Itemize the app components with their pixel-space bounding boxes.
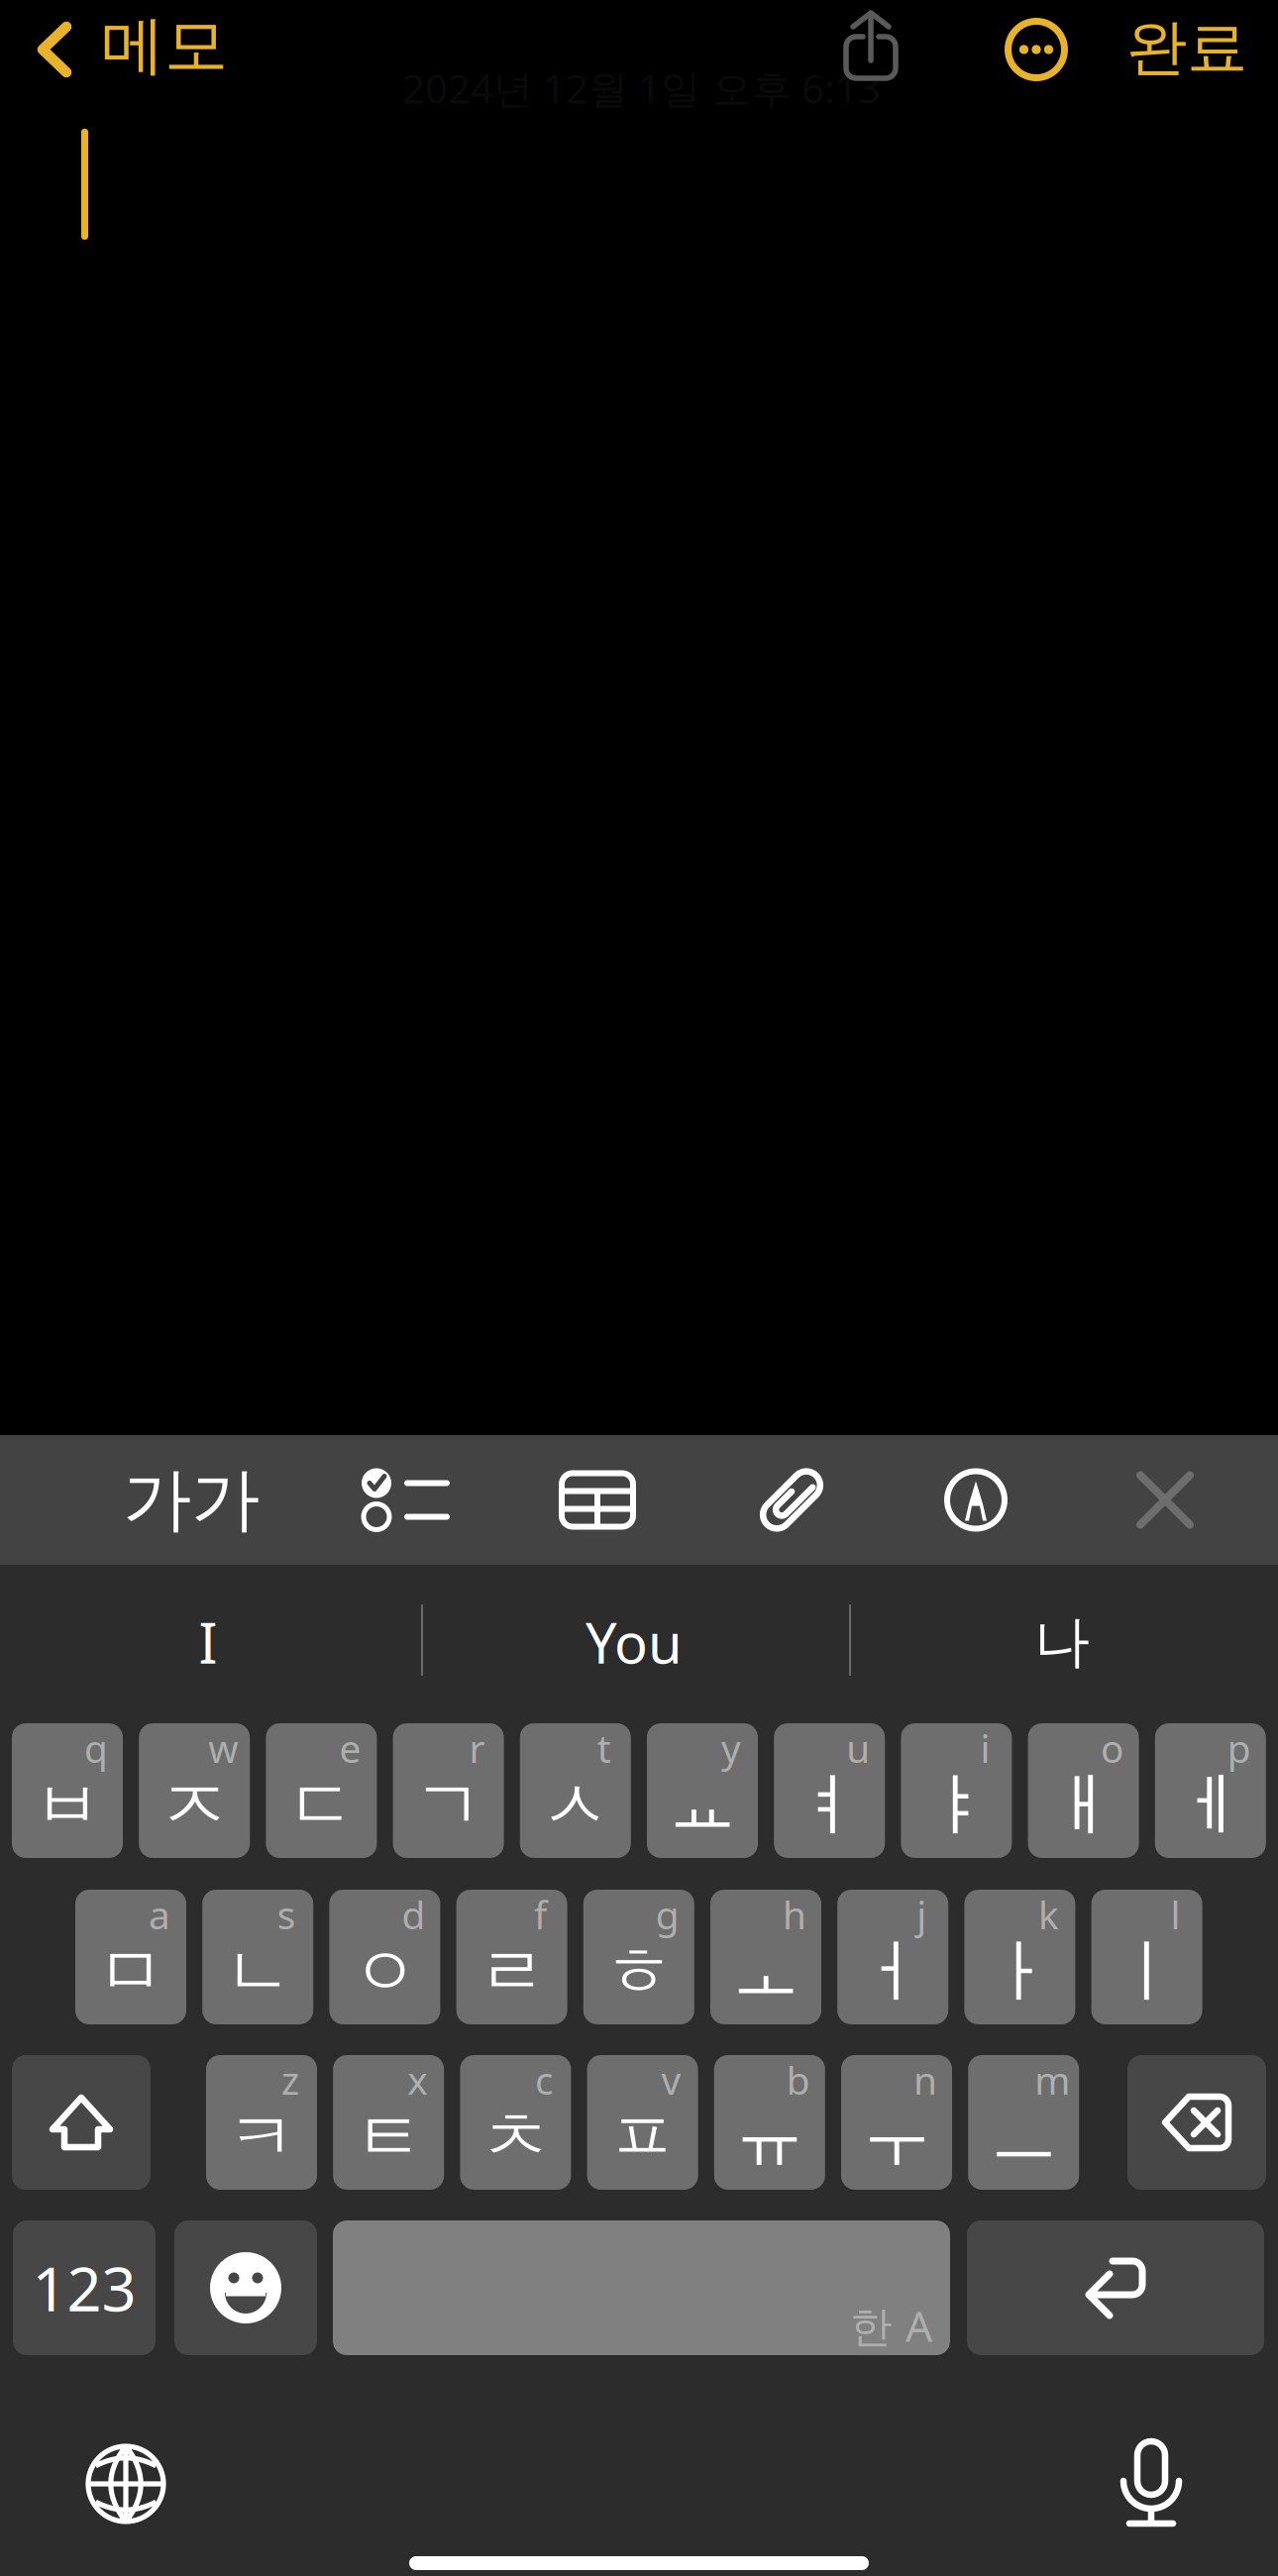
button[interactable]: j	[837, 1890, 948, 2024]
button[interactable]: Next keyboard	[66, 2424, 185, 2543]
button[interactable]: v	[587, 2055, 698, 2190]
staticText: a	[149, 1889, 170, 1940]
button[interactable]: More	[991, 2, 1082, 97]
button[interactable]: d	[329, 1890, 440, 2024]
staticText: y	[721, 1723, 741, 1773]
button[interactable]: 메모	[0, 0, 228, 99]
staticText: ㅓ	[859, 1930, 927, 2014]
button[interactable]: b	[714, 2055, 825, 2190]
button[interactable]: Return	[967, 2220, 1264, 2355]
staticText: f	[534, 1889, 547, 1940]
staticText: 가가	[123, 1458, 260, 1542]
staticText: 123	[32, 2247, 136, 2328]
staticText: z	[281, 2054, 299, 2105]
staticText: ㅊ	[481, 2095, 550, 2179]
button[interactable]: m	[968, 2055, 1079, 2190]
staticText: k	[1038, 1889, 1059, 1940]
staticText: w	[208, 1723, 238, 1773]
staticText: o	[1101, 1723, 1124, 1773]
staticText: h	[783, 1889, 806, 1940]
staticText: i	[980, 1723, 990, 1773]
button[interactable]: z	[206, 2055, 317, 2190]
button[interactable]: g	[583, 1890, 694, 2024]
staticText: ㄷ	[287, 1763, 356, 1848]
staticText: ㅂ	[33, 1763, 102, 1848]
button[interactable]: x	[333, 2055, 444, 2190]
button[interactable]: w	[139, 1723, 250, 1858]
button[interactable]: l	[1091, 1890, 1202, 2024]
staticText: t	[597, 1723, 611, 1773]
button[interactable]: Space	[333, 2220, 950, 2355]
staticText: j	[917, 1889, 927, 1940]
staticText: ㄴ	[224, 1930, 292, 2014]
staticText: x	[407, 2054, 427, 2105]
button[interactable]: 나	[854, 1587, 1270, 1698]
staticText: 메모	[101, 7, 228, 84]
button[interactable]: I	[0, 1587, 416, 1698]
staticText: r	[469, 1723, 485, 1773]
staticText: ㅕ	[795, 1763, 864, 1848]
button[interactable]: p	[1155, 1723, 1266, 1858]
staticText: 2024년 12월 1일 오후 6:13	[402, 62, 881, 114]
staticText: ㅠ	[735, 2095, 804, 2179]
staticText: ㅌ	[354, 2095, 423, 2179]
button[interactable]: Numbers	[13, 2220, 156, 2355]
button[interactable]: Dictation	[1092, 2423, 1211, 2542]
button[interactable]: s	[202, 1890, 313, 2024]
button[interactable]: 완료	[1118, 0, 1256, 95]
button[interactable]: t	[520, 1723, 631, 1858]
button[interactable]: u	[774, 1723, 885, 1858]
staticText: ㅗ	[732, 1930, 800, 2014]
staticText: ㅎ	[605, 1930, 673, 2014]
staticText: ㅍ	[608, 2095, 677, 2179]
staticText: g	[656, 1889, 679, 1940]
staticText: ㅡ	[989, 2095, 1058, 2179]
staticText: 한 A	[850, 2297, 932, 2354]
button[interactable]: n	[841, 2055, 952, 2190]
staticText: 완료	[1126, 10, 1247, 85]
staticText: ㅁ	[97, 1930, 165, 2014]
button[interactable]: k	[964, 1890, 1075, 2024]
button[interactable]: Share	[825, 0, 916, 91]
button[interactable]: Text format	[112, 1435, 270, 1565]
staticText: ㄹ	[478, 1930, 546, 2014]
staticText: ㅈ	[160, 1763, 229, 1848]
button[interactable]: r	[393, 1723, 504, 1858]
staticText: ㅔ	[1176, 1763, 1245, 1848]
button[interactable]: You	[426, 1587, 842, 1698]
staticText: ㅛ	[668, 1763, 737, 1848]
staticText: ㅇ	[351, 1930, 419, 2014]
button[interactable]: h	[710, 1890, 821, 2024]
button[interactable]: Emoji	[174, 2220, 317, 2355]
staticText: 나	[1034, 1608, 1090, 1676]
staticText: ㅑ	[922, 1763, 991, 1848]
staticText: ㅅ	[541, 1763, 610, 1848]
button[interactable]: Delete	[1127, 2055, 1266, 2190]
button[interactable]: c	[460, 2055, 571, 2190]
staticText: e	[339, 1723, 361, 1773]
staticText: q	[84, 1723, 108, 1773]
button[interactable]: Checklist	[327, 1435, 485, 1565]
button[interactable]: i	[901, 1723, 1012, 1858]
staticText: l	[1171, 1889, 1181, 1940]
button[interactable]: o	[1028, 1723, 1139, 1858]
button[interactable]: e	[266, 1723, 377, 1858]
staticText: u	[846, 1723, 870, 1773]
staticText: d	[402, 1889, 425, 1940]
button[interactable]: q	[12, 1723, 123, 1858]
button[interactable]: Markup	[897, 1435, 1055, 1565]
staticText: I	[199, 1605, 217, 1679]
staticText: You	[586, 1605, 683, 1679]
staticText: ㄱ	[414, 1763, 483, 1848]
button[interactable]: Table	[518, 1435, 677, 1565]
staticText: ㅋ	[227, 2095, 296, 2179]
button[interactable]: a	[75, 1890, 186, 2024]
button[interactable]: y	[647, 1723, 758, 1858]
button[interactable]: Close	[1086, 1435, 1244, 1565]
staticText: ㅣ	[1113, 1930, 1181, 2014]
button[interactable]: f	[456, 1890, 567, 2024]
staticText: s	[277, 1889, 296, 1940]
staticText: n	[913, 2054, 937, 2105]
button[interactable]: Attach	[712, 1435, 871, 1565]
button[interactable]: Shift	[12, 2055, 151, 2190]
